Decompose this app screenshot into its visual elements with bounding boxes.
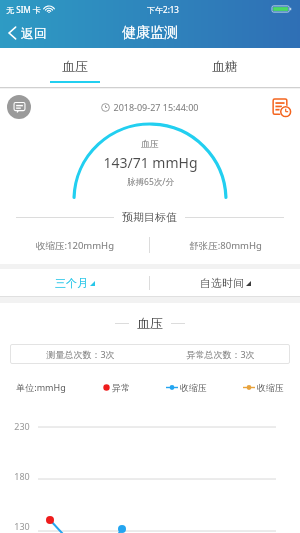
staticText: 返回 — [21, 25, 47, 41]
button[interactable]: 消息 — [7, 95, 31, 119]
staticText: 异常 — [112, 382, 130, 393]
button[interactable]: 自选时间 — [150, 269, 300, 297]
staticText: 130 — [14, 520, 30, 532]
staticText: 异常总次数：3次 — [186, 348, 255, 360]
staticText: 230 — [14, 420, 30, 432]
button[interactable]: 三个月 — [0, 269, 149, 297]
staticText: 预期目标值 — [122, 210, 177, 224]
staticText: 收缩压 — [257, 382, 284, 393]
button[interactable]: 血糖 — [150, 48, 300, 88]
staticText: 三个月 — [55, 276, 88, 290]
staticText: 血压 — [62, 58, 88, 74]
staticText: 健康监测 — [122, 24, 178, 42]
button[interactable]: 血压 — [0, 48, 150, 88]
staticText: 2018-09-27 15:44:00 — [113, 101, 199, 113]
staticText: 143/71 mmHg — [103, 153, 198, 172]
staticText: 舒张压:80mmHg — [189, 239, 262, 252]
staticText: 血压 — [137, 315, 163, 331]
staticText: 单位:mmHg — [16, 381, 66, 393]
staticText: 无 SIM 卡 — [6, 4, 41, 15]
button[interactable]: 返回 — [0, 18, 55, 48]
staticText: 血压 — [141, 138, 159, 149]
button[interactable]: 历史记录 — [269, 95, 293, 119]
staticText: 收缩压:120mmHg — [36, 239, 114, 252]
staticText: 180 — [14, 470, 30, 482]
staticText: 测量总次数：3次 — [46, 348, 115, 360]
staticText: 脉搏65次/分 — [127, 176, 174, 188]
staticText: 自选时间 — [200, 276, 244, 290]
staticText: 下午2:13 — [147, 4, 179, 15]
staticText: 血糖 — [212, 58, 238, 74]
staticText: 收缩压 — [180, 382, 207, 393]
